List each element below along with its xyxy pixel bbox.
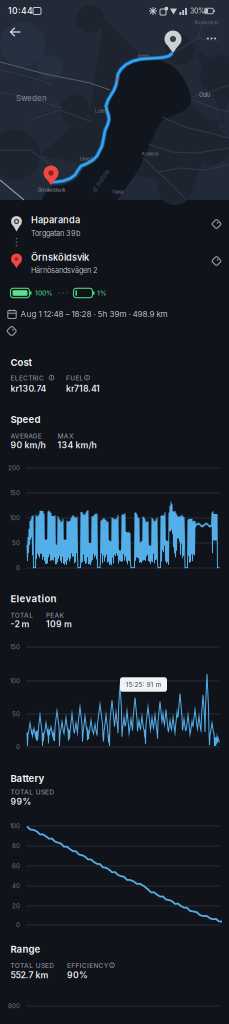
staticText: Örnsköldsvik: [38, 187, 65, 193]
staticText: MAX: [57, 432, 74, 440]
staticText: 0: [16, 564, 20, 572]
staticText: TOTAL USED: [10, 961, 54, 969]
staticText: 200: [8, 464, 20, 472]
staticText: Umeå: [80, 156, 93, 162]
staticText: 50: [12, 710, 20, 718]
staticText: Örnsköldsvik: [31, 252, 89, 263]
staticText: Kokkola: [142, 151, 158, 157]
staticText: 150: [10, 643, 20, 651]
staticText: 100%: [35, 289, 53, 297]
staticText: Luleå: [95, 108, 108, 114]
staticText: 0: [16, 921, 20, 929]
staticText: of Bothnia: [88, 178, 114, 184]
button[interactable]: Fuel cost info: [82, 373, 92, 383]
staticText: FUEL: [66, 374, 84, 382]
button[interactable]: Efficiency info: [107, 960, 117, 970]
staticText: 90%: [67, 970, 88, 980]
staticText: Elevation: [10, 593, 56, 604]
staticText: EFFICIENCY: [67, 961, 109, 969]
staticText: ELECTRIC: [10, 374, 44, 382]
staticText: 20: [12, 902, 20, 910]
staticText: Aug 1 12:48 – 18:28 · 5h 39m · 498.9 km: [20, 309, 167, 319]
staticText: Battery: [10, 773, 44, 784]
staticText: 80: [12, 842, 20, 850]
staticText: 40: [12, 882, 20, 890]
button[interactable]: Add tag: [4, 323, 20, 339]
button[interactable]: Tags for Örnsköldsvik: [208, 253, 224, 269]
staticText: 100: [10, 822, 20, 830]
staticText: kr718.41: [66, 383, 100, 394]
staticText: 90 km/h: [10, 440, 45, 450]
staticText: Range: [10, 943, 40, 955]
staticText: Härnösandsvägen 2: [31, 266, 97, 275]
button[interactable]: Tags for Haparanda: [208, 216, 224, 232]
staticText: 0: [16, 743, 20, 751]
button[interactable]: More options: [204, 32, 218, 44]
button[interactable]: Back: [6, 23, 24, 41]
staticText: PEAK: [46, 611, 64, 619]
staticText: Cost: [10, 357, 32, 368]
staticText: TOTAL: [10, 611, 33, 619]
staticText: -2 m: [10, 619, 29, 629]
staticText: 60: [12, 862, 20, 870]
staticText: 552.7 km: [10, 970, 48, 980]
staticText: 50: [12, 539, 20, 547]
staticText: 109 m: [46, 619, 72, 629]
staticText: 100: [10, 514, 20, 522]
staticText: 800: [8, 1002, 20, 1010]
staticText: Rovaniemi: [194, 20, 218, 25]
staticText: Speed: [10, 414, 40, 425]
button[interactable]: Electric cost info: [46, 373, 56, 383]
staticText: 1%: [97, 289, 107, 297]
staticText: 99%: [10, 796, 31, 807]
staticText: Oulu: [199, 92, 210, 98]
staticText: 15:25: 91 m: [125, 680, 161, 688]
staticText: kr130.74: [10, 383, 46, 394]
staticText: 150: [10, 489, 20, 497]
staticText: 10:44: [8, 6, 33, 16]
staticText: TOTAL USED: [10, 788, 54, 796]
staticText: 134 km/h: [57, 440, 96, 450]
staticText: 30%: [190, 7, 205, 15]
staticText: Torggatan 39b: [31, 229, 80, 238]
staticText: Vaasa: [112, 189, 123, 195]
staticText: Haparanda: [31, 214, 80, 225]
staticText: 100: [10, 677, 20, 685]
staticText: Kemi: [138, 53, 149, 59]
staticText: AVERAGE: [10, 432, 42, 440]
staticText: Sweden: [16, 93, 47, 103]
